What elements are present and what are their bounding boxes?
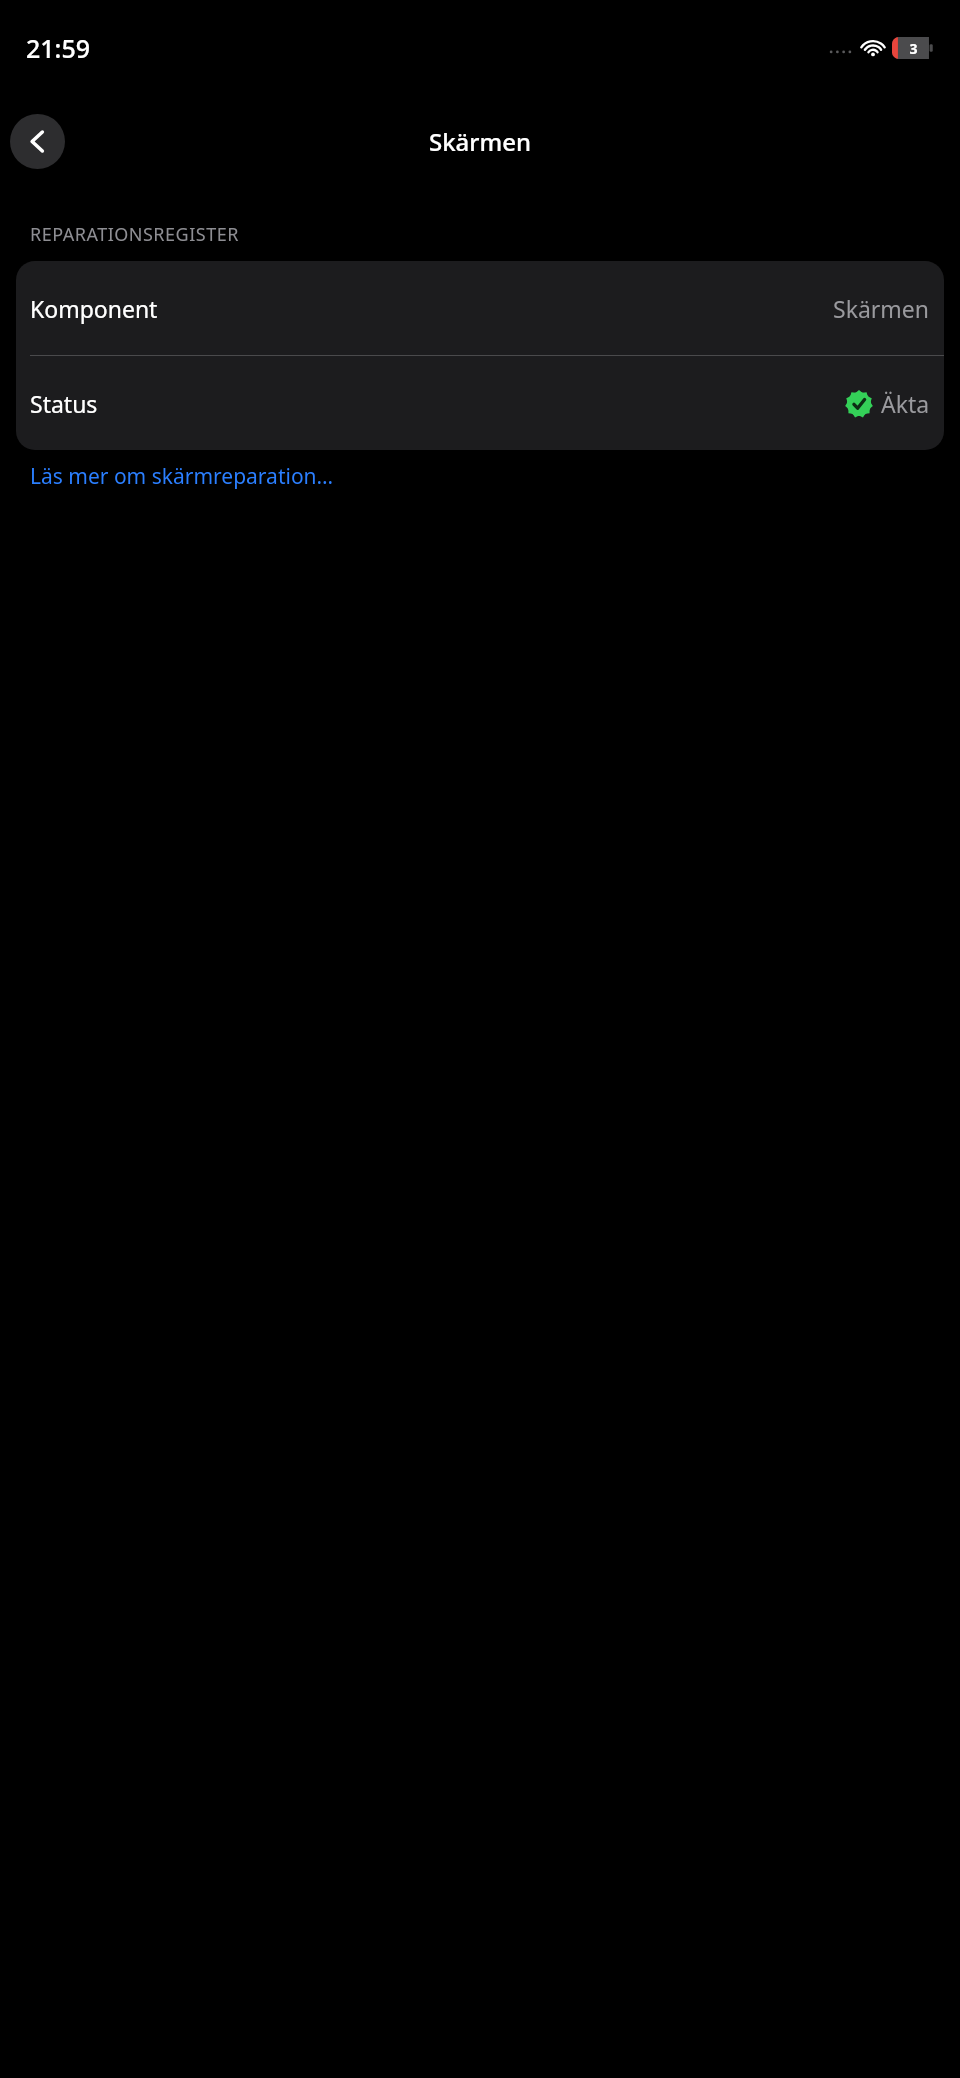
staticText: Status — [30, 388, 98, 419]
staticText: Skärmen — [429, 125, 532, 158]
staticText: Äkta — [881, 388, 930, 419]
button[interactable]: Back — [10, 114, 65, 169]
staticText: 21:59 — [26, 31, 91, 65]
button[interactable]: Läs mer om skärmreparation… — [30, 462, 334, 491]
staticText: Skärmen — [833, 293, 930, 324]
button[interactable]: Status — [16, 356, 944, 450]
staticText: 3 — [895, 39, 932, 58]
staticText: REPARATIONSREGISTER — [30, 222, 239, 247]
staticText: Komponent — [30, 293, 158, 324]
button[interactable]: Komponent — [16, 261, 944, 355]
